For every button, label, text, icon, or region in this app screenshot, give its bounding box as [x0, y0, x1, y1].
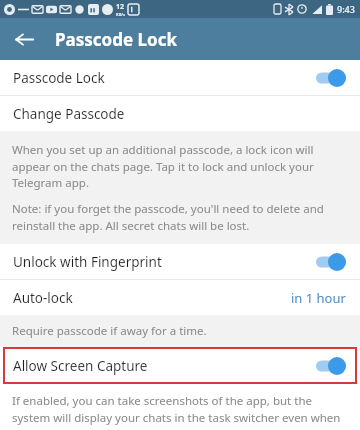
staticText: Passcode Lock [55, 28, 177, 51]
staticText: Change Passcode [13, 105, 125, 123]
button[interactable]: Passcode Lock [0, 60, 360, 95]
staticText: 9:43 [337, 3, 355, 15]
staticText: When you set up an additional passcode, … [12, 142, 348, 190]
button[interactable]: Unlock with Fingerprint [0, 244, 360, 279]
button[interactable]: Auto-lock [0, 280, 360, 315]
button[interactable]: Change Passcode [0, 96, 360, 131]
button[interactable]: Allow Screen Capture [3, 347, 357, 384]
staticText: Note: if you forget the passcode, you'll… [12, 201, 348, 233]
staticText: in 1 hour [291, 289, 346, 307]
staticText: If enabled, you can take screenshots of … [12, 393, 348, 430]
staticText: Require passcode if away for a time. [12, 323, 207, 339]
staticText: Auto-lock [13, 289, 73, 307]
staticText: Passcode Lock [13, 69, 105, 87]
staticText: Allow Screen Capture [13, 357, 148, 375]
staticText: KB/s [116, 12, 125, 17]
button[interactable]: Back [5, 20, 43, 58]
staticText: 12 [116, 2, 125, 12]
staticText: Unlock with Fingerprint [13, 253, 162, 271]
